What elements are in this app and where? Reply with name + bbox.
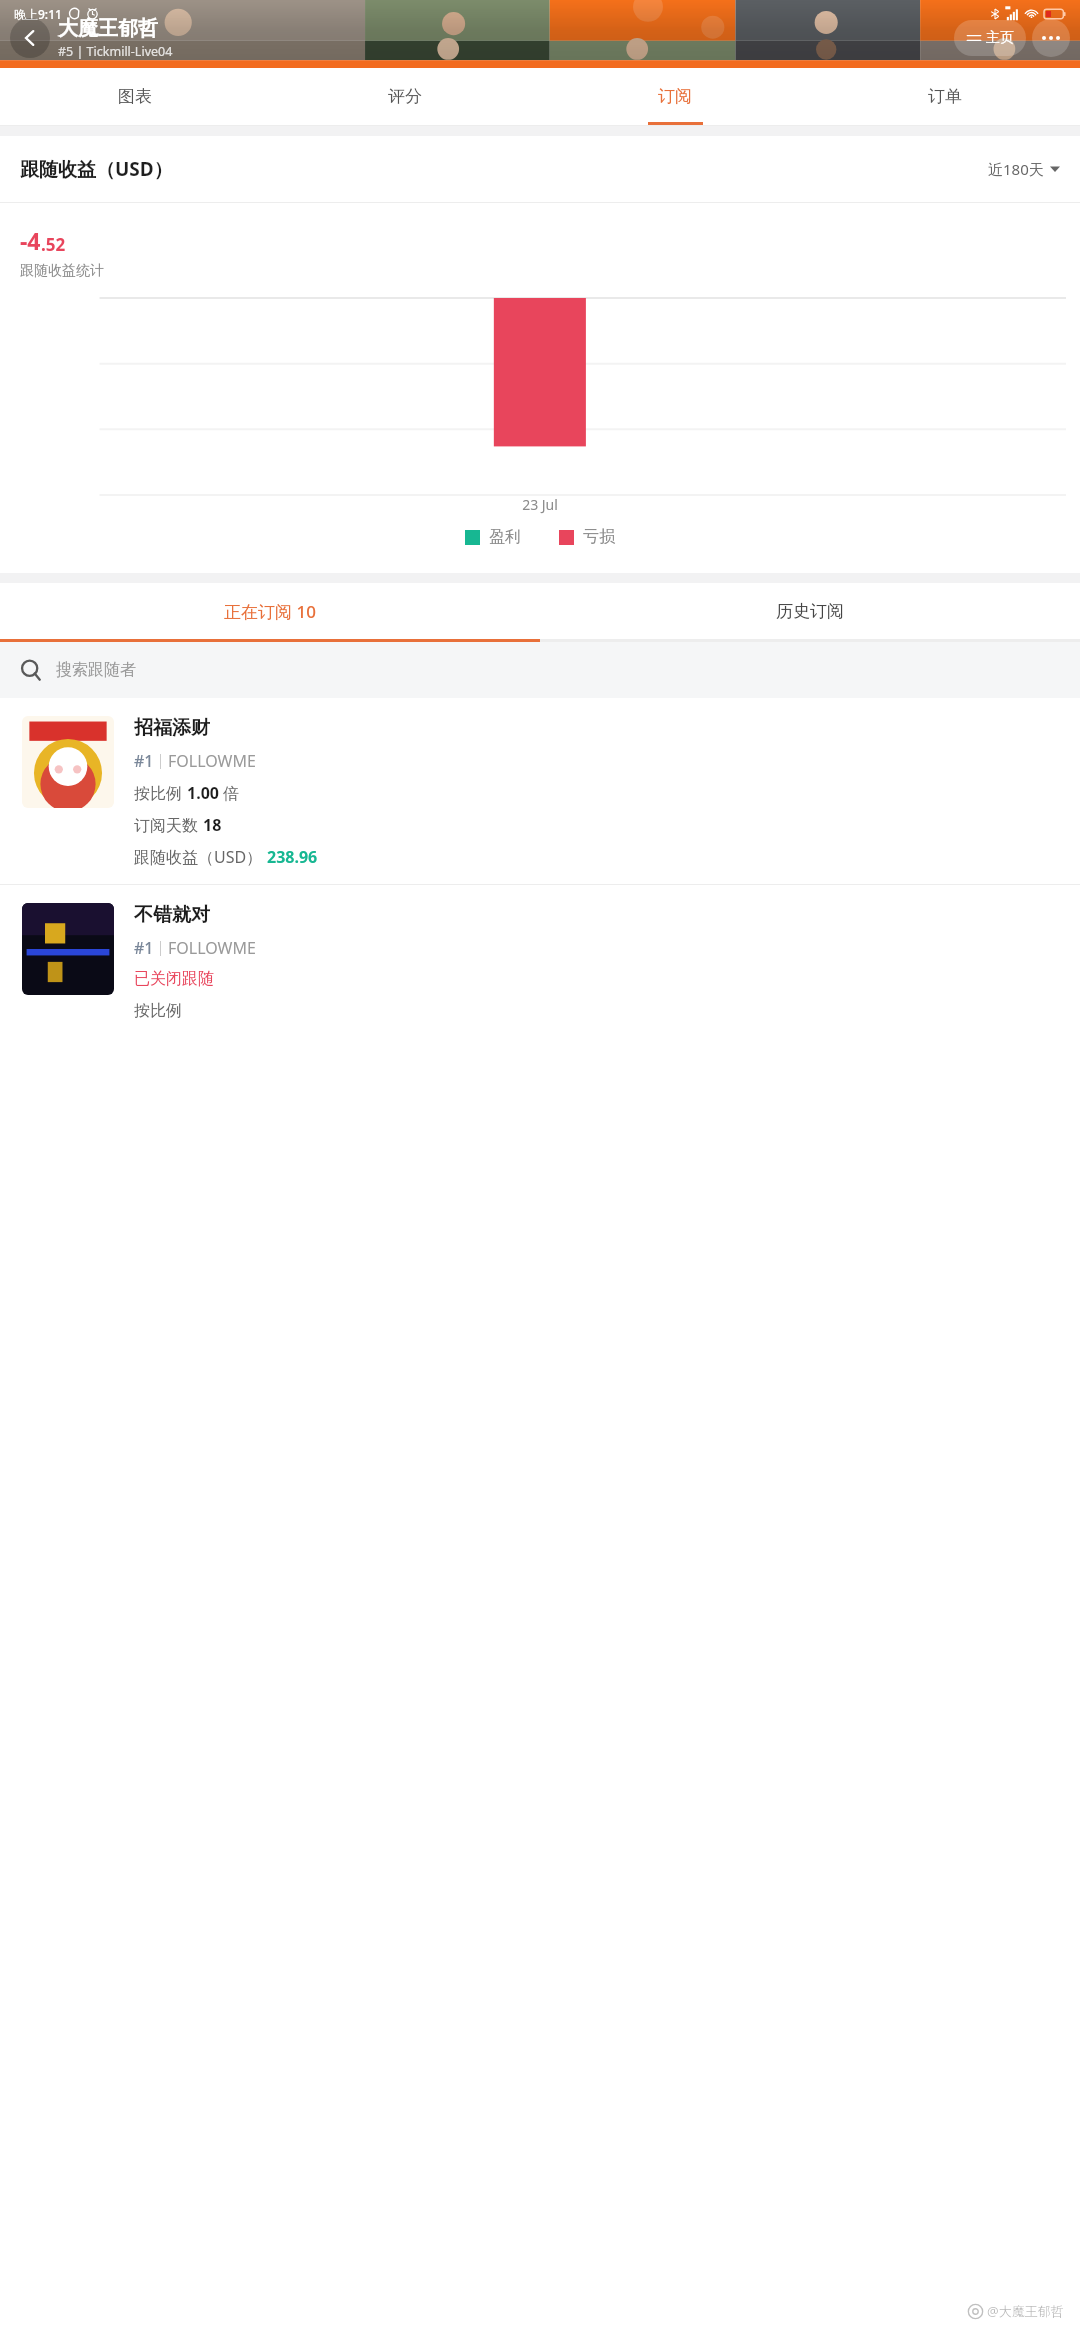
staticText: 18 <box>203 814 222 836</box>
staticText: 跟随收益（USD） <box>134 846 267 868</box>
button[interactable]: 订单 <box>810 68 1080 125</box>
staticText: 订阅 <box>658 86 692 107</box>
staticText: 订阅天数 <box>134 814 203 836</box>
button[interactable]: 正在订阅 10 <box>0 583 540 639</box>
button[interactable]: 不错就对 <box>0 885 1080 1037</box>
staticText: .52 <box>41 233 66 256</box>
staticText: 正在订阅 10 <box>224 600 316 623</box>
staticText: -4 <box>20 225 41 256</box>
button[interactable]: 近180天 <box>988 159 1060 179</box>
staticText: 跟随收益（USD） <box>20 156 173 182</box>
staticText: 跟随收益统计 <box>20 262 104 280</box>
button[interactable]: More options <box>1032 19 1070 57</box>
staticText: 晚上9:11 <box>14 6 62 22</box>
staticText: 已关闭跟随 <box>134 969 214 989</box>
staticText: 按比例 <box>134 999 187 1021</box>
button[interactable]: Back <box>10 18 50 58</box>
staticText: 238.96 <box>267 846 318 868</box>
staticText: #5 | Tickmill-Live04 <box>58 43 173 60</box>
staticText: 倍 <box>219 782 240 804</box>
button[interactable]: 图表 <box>0 68 270 125</box>
button[interactable]: 搜索跟随者 <box>0 642 1080 698</box>
button[interactable]: 订阅 <box>540 68 810 125</box>
staticText: 不错就对 <box>134 903 210 927</box>
staticText: 历史订阅 <box>776 601 844 622</box>
staticText: 评分 <box>388 86 422 107</box>
staticText: #1 <box>134 750 154 772</box>
staticText: @大魔王郁哲 <box>987 2302 1064 2320</box>
button[interactable]: 招福添财 <box>0 698 1080 884</box>
staticText: 搜索跟随者 <box>56 660 136 680</box>
staticText: 亏损 <box>583 527 615 547</box>
button[interactable]: 评分 <box>270 68 540 125</box>
staticText: #1 <box>134 937 154 959</box>
staticText: 大魔王郁哲 <box>58 16 158 41</box>
staticText: 按比例 <box>134 782 187 804</box>
staticText: 招福添财 <box>134 716 210 740</box>
staticText: 盈利 <box>489 527 521 547</box>
button[interactable]: 主页 <box>954 20 1026 56</box>
button[interactable]: 历史订阅 <box>540 583 1080 639</box>
staticText: 主页 <box>986 29 1014 47</box>
staticText: FOLLOWME <box>168 750 256 772</box>
staticText: 1.00 <box>187 782 219 804</box>
staticText: 23 Jul <box>522 495 558 514</box>
staticText: FOLLOWME <box>168 937 256 959</box>
staticText: 图表 <box>118 86 152 107</box>
staticText: 订单 <box>928 86 962 107</box>
staticText: 近180天 <box>988 159 1044 179</box>
